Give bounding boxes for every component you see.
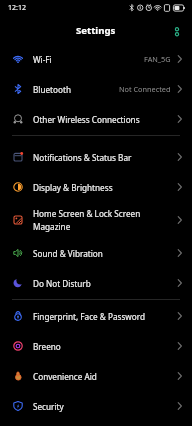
staticText: Do Not Disturb — [33, 278, 177, 289]
button[interactable]: Home Screen & Lock Screen Magazine — [0, 202, 192, 238]
staticText: Bluetooth — [33, 84, 119, 95]
button[interactable]: Other Wireless Connections — [0, 104, 192, 134]
button[interactable]: Sound & Vibration — [0, 238, 192, 268]
button[interactable]: Wi-Fi — [0, 44, 192, 74]
staticText: FAN_5G — [144, 54, 171, 64]
staticText: Notifications & Status Bar — [33, 152, 177, 163]
staticText: 12:12 — [8, 3, 26, 13]
staticText: Convenience Aid — [33, 371, 177, 382]
button[interactable]: Convenience Aid — [0, 361, 192, 391]
button[interactable]: Breeno — [0, 331, 192, 361]
button[interactable]: Display & Brightness — [0, 172, 192, 202]
button[interactable]: Bluetooth — [0, 74, 192, 104]
staticText: Breeno — [33, 341, 177, 352]
button[interactable]: Notifications & Status Bar — [0, 142, 192, 172]
staticText: Wi-Fi — [33, 54, 144, 65]
staticText: Fingerprint, Face & Password — [33, 311, 177, 322]
staticText: Security — [33, 401, 177, 412]
button[interactable]: Fingerprint, Face & Password — [0, 301, 192, 331]
staticText: Settings — [76, 24, 116, 37]
staticText: Display & Brightness — [33, 182, 177, 193]
button[interactable]: Security — [0, 391, 192, 421]
staticText: Other Wireless Connections — [33, 114, 177, 125]
button[interactable] — [171, 24, 183, 36]
staticText: Sound & Vibration — [33, 248, 177, 259]
staticText: Not Connected — [119, 84, 171, 94]
staticText: Home Screen & Lock Screen Magazine — [33, 208, 177, 233]
button[interactable]: Do Not Disturb — [0, 268, 192, 298]
